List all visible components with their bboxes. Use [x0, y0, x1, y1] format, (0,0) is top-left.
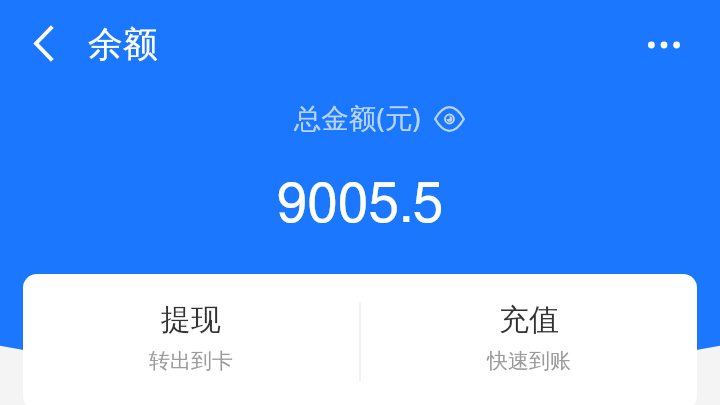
staticText: 快速到账: [487, 348, 571, 374]
staticText: 总金额(元): [294, 99, 421, 137]
staticText: 充值: [499, 301, 559, 339]
staticText: 余额: [88, 22, 158, 66]
button[interactable]: More options: [636, 20, 692, 70]
button[interactable]: Toggle balance visibility: [431, 103, 467, 135]
button[interactable]: 充值: [361, 274, 697, 405]
button[interactable]: 提现: [23, 274, 359, 405]
staticText: 9005.5: [0, 178, 720, 233]
staticText: 转出到卡: [149, 348, 233, 374]
button[interactable]: Back: [18, 18, 68, 68]
staticText: 提现: [161, 301, 221, 339]
